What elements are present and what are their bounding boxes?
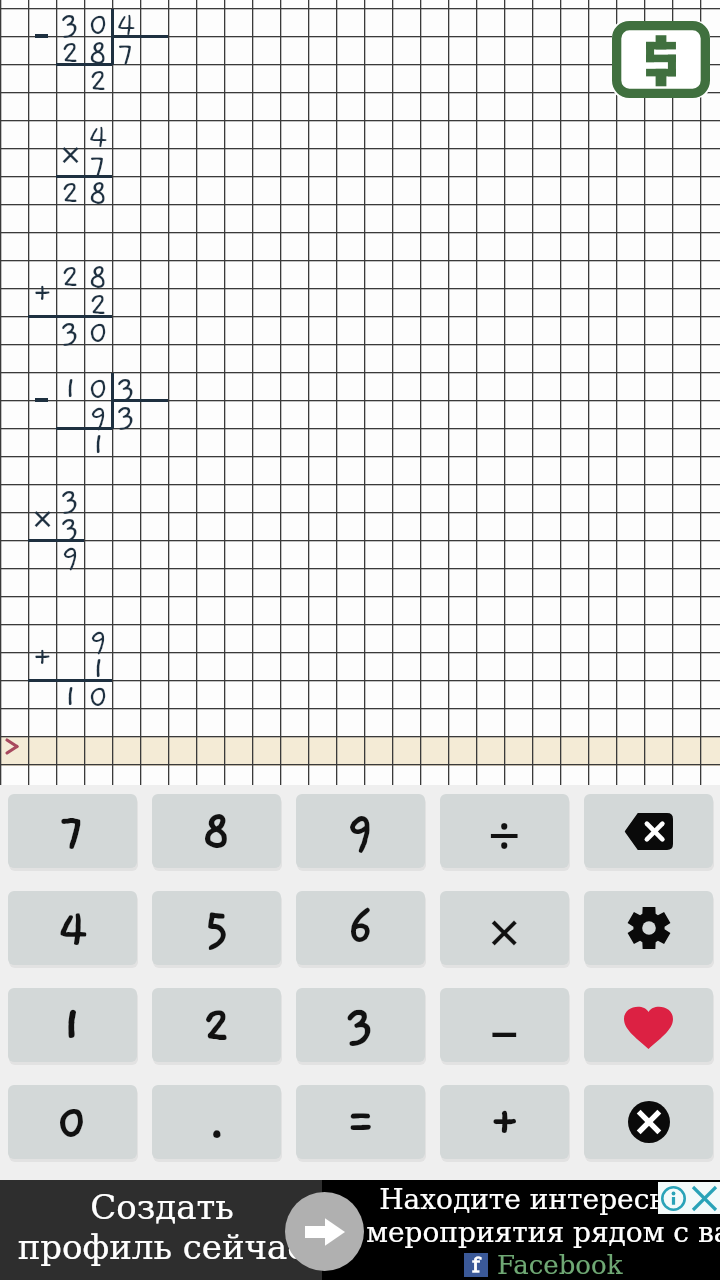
button[interactable]: 4: [8, 891, 137, 965]
button[interactable]: +: [440, 1085, 569, 1159]
staticText: 7: [59, 804, 87, 861]
staticText: 1: [91, 428, 106, 464]
staticText: 7: [117, 36, 135, 72]
staticText: 2: [61, 36, 80, 72]
staticText: +: [487, 1095, 523, 1152]
staticText: Facebook: [497, 1250, 623, 1280]
staticText: Создать профиль сейчас: [0, 1187, 337, 1267]
staticText: 9: [89, 400, 108, 436]
staticText: 4: [57, 901, 89, 958]
button[interactable]: 3: [296, 988, 425, 1062]
staticText: 4: [88, 120, 108, 156]
button[interactable]: del: [584, 794, 713, 868]
staticText: 8: [88, 176, 108, 212]
staticText: –: [490, 989, 519, 1062]
staticText: 7: [89, 148, 107, 184]
staticText: 0: [56, 1095, 89, 1152]
staticText: 3: [60, 316, 80, 352]
staticText: мероприятия рядом с вами: [366, 1216, 720, 1249]
staticText: 1: [60, 998, 85, 1055]
staticText: 3: [60, 512, 80, 548]
button[interactable]: 8: [152, 794, 281, 868]
staticText: 6: [347, 901, 375, 958]
staticText: 3: [345, 998, 376, 1055]
staticText: +: [31, 276, 54, 312]
staticText: 3: [116, 372, 136, 408]
button[interactable]: .: [152, 1085, 281, 1159]
button[interactable]: 1: [8, 988, 137, 1062]
staticText: ×: [488, 892, 521, 965]
staticText: 2: [202, 998, 232, 1055]
staticText: 9: [89, 624, 108, 660]
staticText: .: [207, 1095, 227, 1152]
staticText: 8: [201, 804, 232, 861]
button[interactable]: Close ad: [689, 1182, 720, 1214]
button[interactable]: 0: [8, 1085, 137, 1159]
button[interactable]: 6: [296, 891, 425, 965]
staticText: 1: [63, 680, 78, 716]
staticText: 2: [89, 64, 108, 100]
staticText: 0: [88, 680, 109, 716]
staticText: f: [472, 1253, 480, 1277]
button[interactable]: 2: [152, 988, 281, 1062]
staticText: 0: [88, 372, 109, 408]
button[interactable]: Remove ads: [612, 21, 710, 98]
staticText: ÷: [488, 795, 521, 868]
staticText: 0: [88, 8, 109, 44]
staticText: 1: [63, 372, 78, 408]
button[interactable]: =: [296, 1085, 425, 1159]
staticText: 4: [116, 8, 136, 44]
button[interactable]: close: [584, 1085, 713, 1159]
button[interactable]: gear: [584, 891, 713, 965]
staticText: 2: [61, 260, 80, 296]
staticText: ×: [32, 494, 53, 543]
staticText: 1: [91, 652, 106, 688]
staticText: 8: [88, 260, 108, 296]
staticText: 9: [346, 804, 376, 861]
staticText: 3: [60, 484, 80, 520]
staticText: 0: [88, 316, 109, 352]
button[interactable]: ×: [440, 891, 569, 965]
staticText: Находите интересные: [379, 1183, 707, 1216]
staticText: +: [31, 640, 54, 676]
button[interactable]: 7: [8, 794, 137, 868]
button[interactable]: 5: [152, 891, 281, 965]
button[interactable]: ÷: [440, 794, 569, 868]
staticText: =: [343, 1095, 379, 1152]
staticText: 2: [89, 288, 108, 324]
button[interactable]: Ad info: [658, 1182, 689, 1214]
staticText: 3: [116, 400, 136, 436]
button[interactable]: 9: [296, 794, 425, 868]
staticText: 5: [203, 901, 231, 958]
staticText: 3: [60, 8, 80, 44]
button[interactable]: Advertisement: [0, 1180, 720, 1280]
staticText: 9: [61, 540, 80, 576]
staticText: ×: [60, 130, 81, 179]
button[interactable]: –: [440, 988, 569, 1062]
staticText: 8: [88, 36, 108, 72]
button[interactable]: heart: [584, 988, 713, 1062]
staticText: 2: [61, 176, 80, 212]
